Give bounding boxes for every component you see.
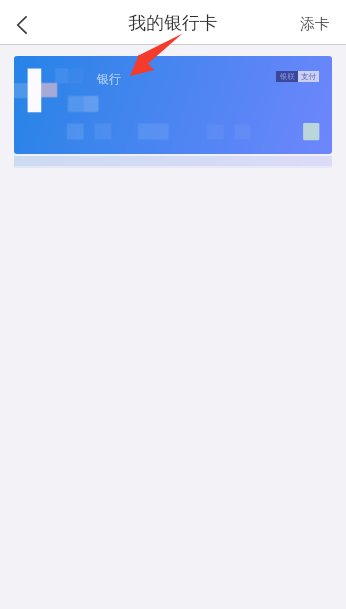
staticText: 添卡 [300,15,330,34]
staticText: 支付 [301,72,316,81]
staticText: 我的银行卡 [128,12,218,35]
staticText: 银联 [280,72,295,81]
staticText: 银行 [97,71,121,86]
button[interactable]: 银行 [14,56,332,154]
button[interactable]: 添卡 [286,0,346,45]
button[interactable]: Back [0,0,42,45]
